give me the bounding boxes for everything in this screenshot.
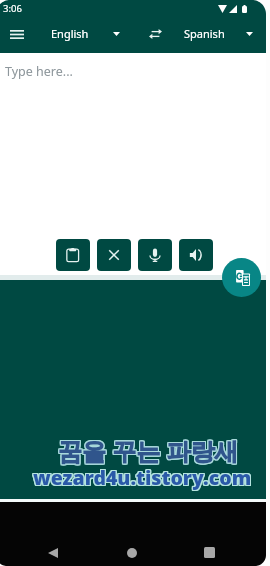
staticText: 꿈을 꾸는 파랑새 — [59, 434, 240, 467]
staticText: 꿈을 꾸는 파랑새 — [58, 433, 239, 466]
staticText: wezard4u.tistory.com — [33, 464, 252, 491]
staticText: 꿈을 꾸는 파랑새 — [57, 434, 238, 467]
button[interactable]: English — [44, 22, 124, 44]
staticText: wezard4u.tistory.com — [32, 463, 251, 490]
button[interactable]: Back — [30, 536, 76, 566]
staticText: 3:06 — [3, 2, 22, 15]
button[interactable]: Google Translate — [222, 258, 261, 297]
staticText: wezard4u.tistory.com — [33, 463, 252, 490]
staticText: wezard4u.tistory.com — [34, 464, 253, 491]
staticText: 꿈을 꾸는 파랑새 — [58, 434, 239, 467]
staticText: wezard4u.tistory.com — [32, 465, 251, 492]
button[interactable]: Paste — [56, 239, 90, 271]
staticText: wezard4u.tistory.com — [34, 463, 253, 490]
button[interactable]: Home — [109, 536, 155, 566]
button[interactable]: Listen — [179, 239, 213, 271]
staticText: wezard4u.tistory.com — [34, 465, 253, 492]
button[interactable]: Swap languages — [145, 25, 166, 43]
button[interactable]: Clear text — [97, 239, 131, 271]
staticText: wezard4u.tistory.com — [33, 465, 252, 492]
button[interactable]: Voice input — [138, 239, 172, 271]
staticText: Type here... — [5, 63, 73, 80]
staticText: 꿈을 꾸는 파랑새 — [59, 435, 240, 468]
button[interactable]: Spanish — [177, 22, 261, 44]
staticText: 꿈을 꾸는 파랑새 — [58, 435, 239, 468]
staticText: 꿈을 꾸는 파랑새 — [57, 435, 238, 468]
staticText: 꿈을 꾸는 파랑새 — [57, 433, 238, 466]
staticText: 꿈을 꾸는 파랑새 — [59, 433, 240, 466]
button[interactable]: Recent apps — [186, 536, 232, 566]
staticText: wezard4u.tistory.com — [32, 464, 251, 491]
button[interactable]: Open menu — [2, 25, 31, 43]
staticText: Spanish — [184, 26, 225, 41]
staticText: English — [51, 26, 89, 41]
